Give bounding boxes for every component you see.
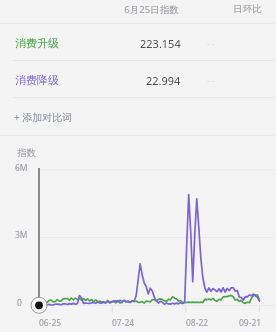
staticText: + 添加对比词: [14, 110, 73, 124]
staticText: 6月25日指数: [124, 3, 179, 16]
staticText: 223.154: [140, 36, 181, 51]
button[interactable]: 消费降级: [0, 61, 276, 97]
staticText: - -: [207, 38, 215, 49]
button[interactable]: + 添加对比词: [0, 98, 276, 135]
staticText: 消费降级: [15, 73, 59, 87]
button[interactable]: 消费升级: [0, 24, 276, 60]
staticText: 日环比: [233, 3, 262, 15]
staticText: 06-25: [39, 317, 62, 329]
staticText: 消费升级: [15, 36, 59, 50]
staticText: 09-21: [239, 317, 262, 329]
staticText: 07-24: [112, 317, 135, 329]
staticText: 08-22: [186, 317, 209, 329]
other: Index trend chart: [0, 0, 276, 332]
staticText: 22.994: [146, 73, 181, 88]
staticText: 0: [17, 297, 22, 309]
staticText: 6M: [15, 162, 28, 174]
staticText: 指数: [17, 147, 36, 159]
staticText: 3M: [15, 229, 28, 241]
staticText: - -: [207, 75, 215, 86]
